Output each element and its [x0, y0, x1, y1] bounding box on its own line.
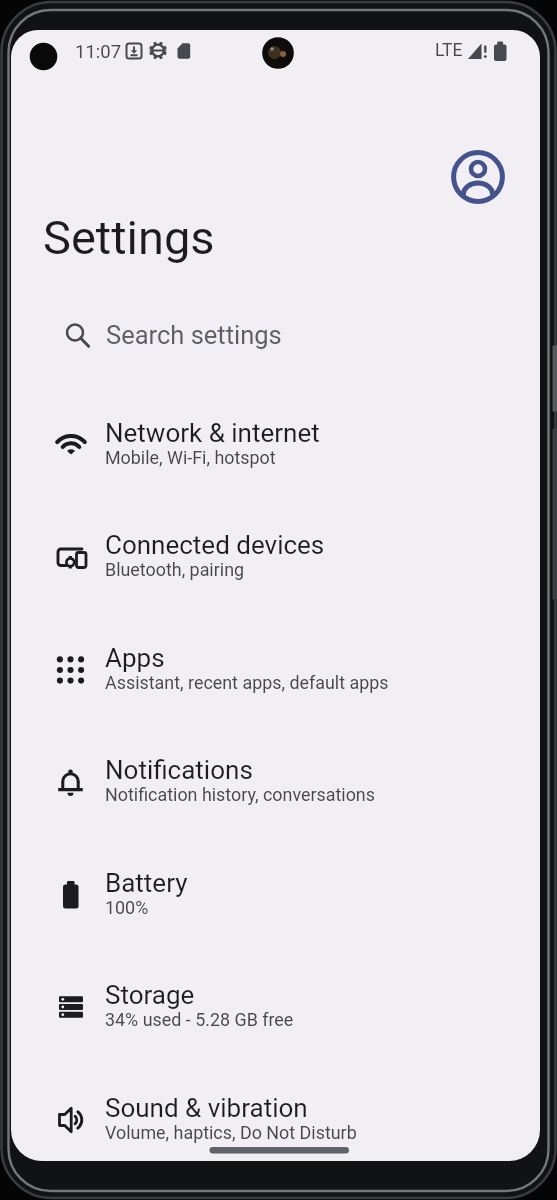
staticText: Assistant, recent apps, default apps [105, 672, 389, 693]
button[interactable]: Apps [11, 619, 540, 721]
button[interactable]: Network & internet [11, 394, 540, 496]
staticText: Battery [105, 868, 188, 898]
button[interactable]: Notifications [11, 731, 540, 833]
staticText: Notifications [105, 755, 253, 785]
staticText: Search settings [106, 320, 282, 350]
staticText: Notification history, conversations [105, 784, 375, 805]
button[interactable]: Search settings [49, 303, 501, 363]
staticText: Network & internet [105, 418, 320, 448]
staticText: Bluetooth, pairing [105, 559, 245, 580]
staticText: Storage [105, 980, 195, 1010]
staticText: Connected devices [105, 530, 325, 560]
staticText: LTE [435, 40, 463, 61]
staticText: Apps [105, 643, 165, 673]
staticText: 11:07 [75, 41, 122, 63]
staticText: Settings [43, 210, 215, 265]
staticText: 100% [105, 897, 149, 918]
button[interactable]: Sound & vibration [11, 1069, 540, 1161]
staticText: Sound & vibration [105, 1093, 308, 1123]
staticText: Mobile, Wi-Fi, hotspot [105, 447, 276, 468]
button[interactable]: Battery [11, 844, 540, 946]
button[interactable]: Connected devices [11, 506, 540, 608]
button[interactable]: Storage [11, 956, 540, 1058]
staticText: 34% used - 5.28 GB free [105, 1009, 294, 1030]
staticText: Volume, haptics, Do Not Disturb [105, 1122, 357, 1143]
button[interactable] [453, 151, 505, 203]
